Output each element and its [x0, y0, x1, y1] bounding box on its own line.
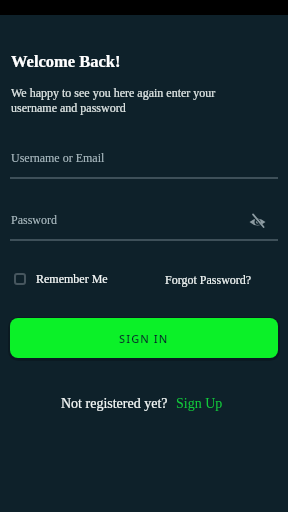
- button[interactable]: SIGN IN: [10, 318, 278, 358]
- staticText: Welcome Back!: [11, 52, 121, 70]
- button[interactable]: Sign Up: [176, 396, 223, 412]
- staticText: Remember Me: [36, 272, 108, 285]
- staticText: Forgot Password?: [165, 273, 252, 286]
- button[interactable]: Remember Me: [14, 272, 108, 285]
- staticText: Username or Email: [11, 151, 105, 164]
- button[interactable]: Password: [10, 212, 278, 241]
- staticText: We happy to see you here again enter you…: [11, 86, 216, 114]
- button[interactable]: Forgot Password?: [165, 273, 252, 286]
- staticText: Not registered yet?: [61, 396, 168, 412]
- staticText: SIGN IN: [119, 331, 169, 346]
- staticText: Password: [11, 213, 58, 226]
- button[interactable]: Username or Email: [10, 151, 278, 179]
- staticText: Sign Up: [176, 396, 223, 412]
